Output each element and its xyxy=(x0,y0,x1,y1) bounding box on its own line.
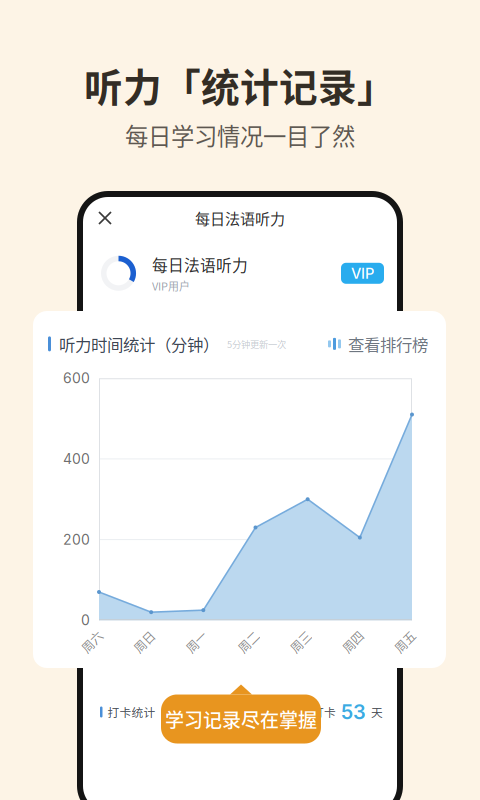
staticText: 周四 xyxy=(341,633,365,650)
staticText: 每日学习情况一目了然 xyxy=(125,118,355,152)
staticText: 周六 xyxy=(80,633,104,650)
staticText: 学习记录尽在掌握 xyxy=(165,705,317,733)
staticText: 每日法语听力 xyxy=(152,253,248,276)
button[interactable]: 查看排行榜 xyxy=(328,332,428,356)
staticText: 听力「统计记录」 xyxy=(84,57,396,113)
staticText: 周三 xyxy=(289,633,313,650)
staticText: 打卡统计 xyxy=(107,703,155,720)
button[interactable]: Close xyxy=(89,202,121,234)
staticText: 5分钟更新一次 xyxy=(227,337,286,351)
staticText: 周五 xyxy=(393,633,417,650)
staticText: 周一 xyxy=(184,633,208,650)
staticText: 0 xyxy=(81,612,90,629)
staticText: 每日法语听力 xyxy=(195,207,285,229)
staticText: 200 xyxy=(63,531,90,548)
staticText: 周二 xyxy=(237,633,261,650)
staticText: 打卡 xyxy=(312,703,336,720)
staticText: 53 xyxy=(336,700,371,724)
staticText: 听力时间统计（分钟） xyxy=(59,332,219,356)
button[interactable]: VIP xyxy=(341,263,384,284)
staticText: 600 xyxy=(63,370,90,387)
staticText: 400 xyxy=(63,450,90,467)
staticText: 查看排行榜 xyxy=(348,332,428,356)
staticText: 天 xyxy=(371,703,383,720)
staticText: VIP xyxy=(351,264,374,282)
staticText: VIP用户 xyxy=(152,278,190,294)
staticText: 周日 xyxy=(132,633,156,650)
